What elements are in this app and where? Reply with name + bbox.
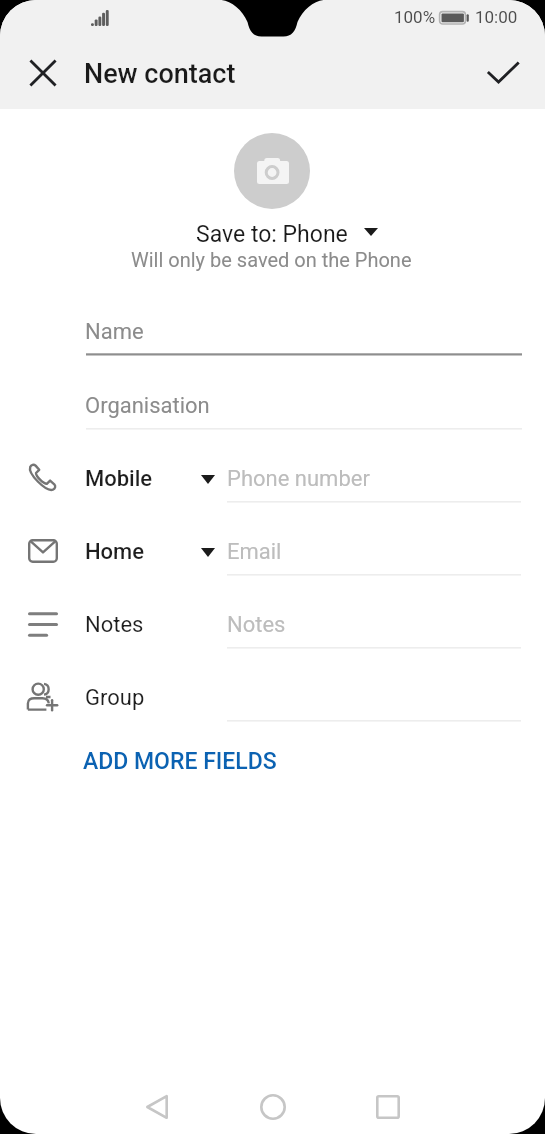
staticText: Email <box>227 539 282 565</box>
staticText: Mobile <box>85 466 153 492</box>
button[interactable] <box>84 383 522 431</box>
button[interactable]: Save <box>479 49 527 97</box>
button[interactable]: Mobile <box>0 442 545 510</box>
staticText: Phone number <box>227 466 370 492</box>
staticText: Organisation <box>85 393 210 419</box>
staticText: New contact <box>84 58 236 90</box>
staticText: ADD MORE FIELDS <box>83 748 277 775</box>
button[interactable]: ADD MORE FIELDS <box>70 739 290 783</box>
button[interactable]: Home <box>249 1083 297 1131</box>
button[interactable]: Notes <box>0 588 545 656</box>
staticText: Group <box>85 685 145 711</box>
button[interactable]: Home <box>0 515 545 583</box>
button[interactable]: Back <box>133 1083 181 1131</box>
button[interactable]: Save to: Phone <box>190 218 388 250</box>
button[interactable]: Close <box>19 49 67 97</box>
button[interactable]: Add photo <box>234 133 310 209</box>
staticText: Save to: Phone <box>196 221 348 248</box>
button[interactable] <box>84 309 522 357</box>
staticText: Notes <box>227 612 286 638</box>
staticText: Notes <box>85 612 144 638</box>
button[interactable]: Recents <box>364 1083 412 1131</box>
staticText: 100% <box>394 7 436 27</box>
staticText: Home <box>85 539 145 565</box>
staticText: 10:00 <box>475 7 518 27</box>
staticText: Name <box>85 319 144 345</box>
staticText: Will only be saved on the Phone <box>131 248 412 271</box>
button[interactable]: Group <box>0 661 545 729</box>
